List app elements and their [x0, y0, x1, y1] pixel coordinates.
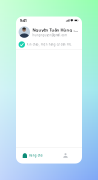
staticText: Nguyễn Tuấn Hùng - Giới nhà [32, 27, 77, 32]
button[interactable]: Nguyễn Tuấn Hùng - Giới nhà [16, 24, 82, 40]
staticText: hungnguyen@gmail.com [32, 33, 66, 37]
button[interactable]: Trang chủ [16, 147, 49, 163]
button[interactable]: Tài khoản [49, 147, 82, 163]
staticText: Xin chào, Hiện hàng cư dân HTC [27, 43, 72, 46]
staticText: Trang chủ [29, 154, 43, 157]
staticText: 9:41 [20, 18, 27, 23]
